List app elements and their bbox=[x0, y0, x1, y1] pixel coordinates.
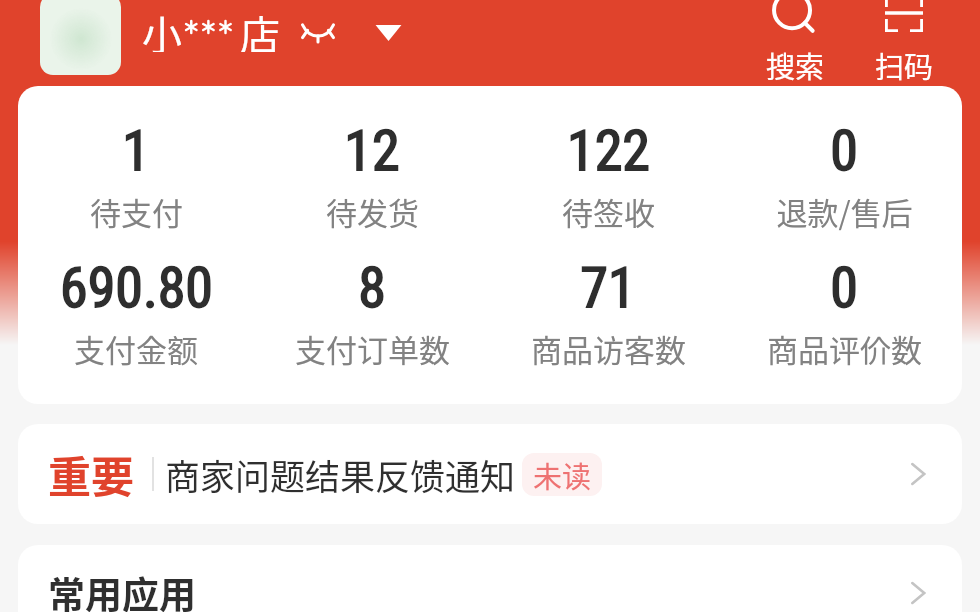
button[interactable]: 690.80 bbox=[18, 255, 254, 385]
staticText: 退款/售后 bbox=[776, 189, 913, 234]
staticText: 搜索 bbox=[766, 44, 825, 86]
button[interactable]: 0 bbox=[726, 255, 962, 385]
button[interactable]: 71 bbox=[490, 255, 726, 385]
staticText: 12 bbox=[344, 118, 400, 184]
button[interactable]: 8 bbox=[254, 255, 490, 385]
button[interactable]: 12 bbox=[254, 118, 490, 248]
button[interactable]: Hide revenue bbox=[300, 20, 336, 42]
staticText: 扫码 bbox=[875, 44, 934, 86]
button[interactable]: 0 bbox=[726, 118, 962, 248]
button[interactable]: 搜索 bbox=[757, 0, 827, 80]
button[interactable]: 重要 bbox=[18, 424, 962, 524]
button[interactable]: Switch shop bbox=[375, 24, 402, 42]
button[interactable]: Shop avatar bbox=[40, 0, 121, 75]
button[interactable]: 扫码 bbox=[869, 0, 939, 80]
staticText: 1 bbox=[122, 118, 150, 184]
staticText: 支付订单数 bbox=[295, 326, 450, 371]
staticText: 店 bbox=[240, 4, 280, 52]
staticText: 支付金额 bbox=[74, 326, 198, 371]
staticText: 重要 bbox=[48, 443, 134, 505]
staticText: 待支付 bbox=[90, 189, 183, 234]
staticText: 待签收 bbox=[562, 189, 655, 234]
staticText: 8 bbox=[358, 255, 386, 321]
button[interactable]: 小 bbox=[142, 4, 280, 52]
button[interactable]: 1 bbox=[18, 118, 254, 248]
staticText: 小 bbox=[142, 4, 182, 52]
staticText: 690.80 bbox=[60, 255, 213, 321]
staticText: 71 bbox=[580, 255, 636, 321]
button[interactable]: 122 bbox=[490, 118, 726, 248]
button[interactable]: 常用应用 bbox=[18, 545, 962, 612]
staticText: 0 bbox=[830, 255, 858, 321]
staticText: 商家问题结果反馈通知 bbox=[165, 449, 516, 500]
staticText: 122 bbox=[567, 118, 650, 184]
staticText: 待发货 bbox=[326, 189, 419, 234]
staticText: 常用应用 bbox=[48, 566, 196, 612]
staticText: 0 bbox=[830, 118, 858, 184]
staticText: 商品评价数 bbox=[767, 326, 922, 371]
staticText: 未读 bbox=[533, 454, 592, 496]
staticText: 商品访客数 bbox=[531, 326, 686, 371]
